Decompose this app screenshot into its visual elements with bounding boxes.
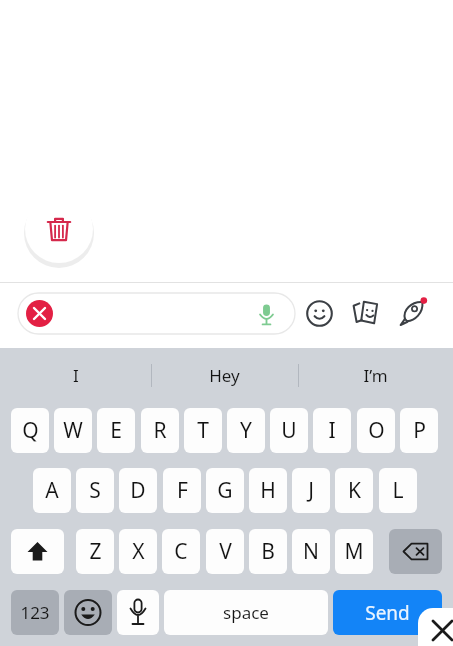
button[interactable]: Z (76, 529, 114, 574)
staticText: Hey (209, 364, 240, 387)
button[interactable]: F (163, 468, 201, 513)
button[interactable]: P (400, 408, 438, 453)
button[interactable]: L (379, 468, 417, 513)
staticText: X (132, 537, 145, 566)
staticText: A (45, 476, 59, 505)
staticText: F (177, 476, 188, 505)
staticText: L (392, 476, 404, 505)
staticText: I’m (363, 364, 388, 387)
staticText: P (413, 416, 426, 445)
button[interactable]: X (119, 529, 157, 574)
button[interactable]: Backspace (389, 529, 442, 574)
staticText: I (73, 364, 79, 387)
button[interactable]: A (33, 468, 71, 513)
button[interactable]: C (162, 529, 200, 574)
button[interactable]: Delete (25, 195, 93, 263)
button[interactable]: Dictate (117, 590, 159, 635)
button[interactable]: Q (11, 408, 49, 453)
button[interactable]: More apps (395, 295, 430, 330)
button[interactable]: S (76, 468, 114, 513)
staticText: U (281, 416, 297, 445)
button[interactable]: U (270, 408, 308, 453)
button[interactable]: W (54, 408, 92, 453)
staticText: space (223, 601, 269, 624)
staticText: B (261, 537, 275, 566)
button[interactable]: B (249, 529, 287, 574)
staticText: H (260, 476, 276, 505)
staticText: S (89, 476, 101, 505)
button[interactable]: I’m (298, 360, 453, 390)
button[interactable]: R (141, 408, 179, 453)
button[interactable]: space (164, 590, 328, 635)
button[interactable]: 123 (11, 590, 59, 635)
button[interactable]: Hey (151, 360, 298, 390)
staticText: Send (365, 600, 410, 626)
button[interactable]: T (184, 408, 222, 453)
button[interactable]: K (335, 468, 373, 513)
staticText: R (153, 416, 167, 445)
button[interactable]: V (206, 529, 244, 574)
button[interactable]: N (292, 529, 330, 574)
staticText: K (348, 476, 361, 505)
button[interactable]: Emoji (303, 297, 336, 330)
staticText: I (328, 416, 336, 445)
button[interactable]: H (249, 468, 287, 513)
button[interactable]: Y (227, 408, 265, 453)
button[interactable]: Clear text (26, 300, 53, 327)
button[interactable]: O (357, 408, 395, 453)
button[interactable]: I (0, 360, 151, 390)
button[interactable]: M (335, 529, 373, 574)
button[interactable]: Voice input (251, 299, 281, 329)
button[interactable]: Send (333, 590, 442, 635)
button[interactable]: Close (424, 612, 453, 646)
staticText: D (130, 476, 146, 505)
button[interactable]: J (292, 468, 330, 513)
staticText: N (303, 537, 319, 566)
staticText: M (344, 537, 364, 566)
button[interactable]: E (97, 408, 135, 453)
button[interactable]: I (313, 408, 351, 453)
staticText: W (63, 416, 83, 445)
staticText: J (308, 476, 314, 505)
staticText: Z (89, 537, 102, 566)
staticText: Q (22, 416, 39, 445)
button[interactable]: Emoji keyboard (64, 590, 112, 635)
staticText: O (368, 416, 385, 445)
staticText: C (174, 537, 188, 566)
staticText: Y (240, 416, 252, 445)
button[interactable]: G (206, 468, 244, 513)
staticText: 123 (20, 601, 50, 624)
button[interactable]: Shift (11, 529, 64, 574)
staticText: G (217, 476, 233, 505)
button[interactable] (18, 293, 295, 334)
button[interactable]: Stickers (349, 296, 382, 329)
button[interactable]: D (119, 468, 157, 513)
staticText: T (197, 416, 209, 445)
staticText: V (219, 537, 232, 566)
staticText: E (110, 416, 122, 445)
